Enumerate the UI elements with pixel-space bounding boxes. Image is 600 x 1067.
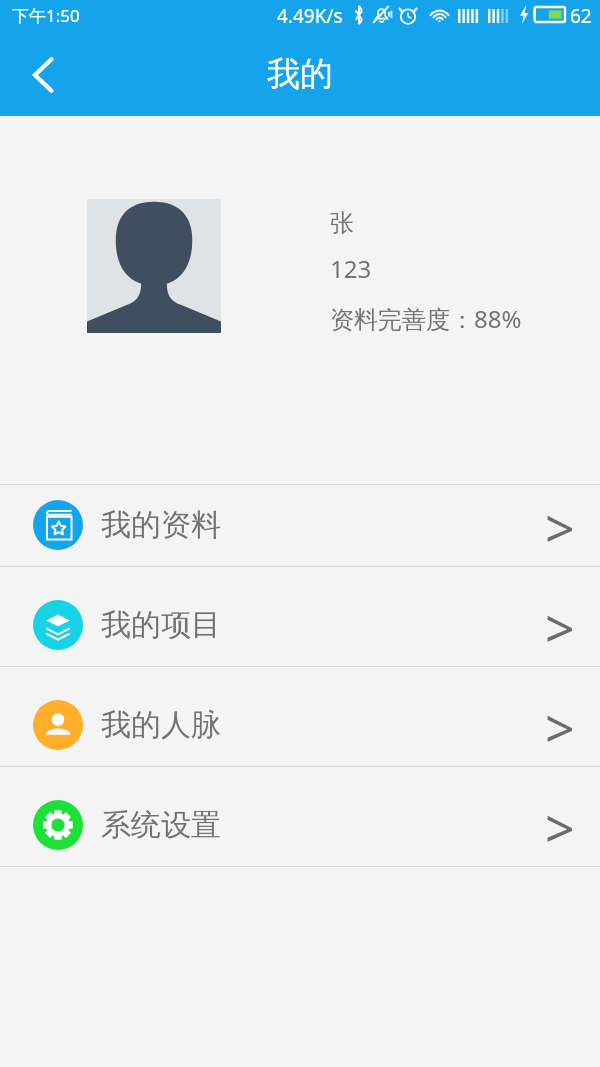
button[interactable]: 我的项目: [0, 567, 600, 666]
staticText: 4.49K/s: [277, 3, 343, 29]
button[interactable]: 我的资料: [0, 484, 600, 566]
button[interactable]: Back: [21, 51, 69, 99]
button[interactable]: 我的人脉: [0, 667, 600, 766]
staticText: >: [545, 592, 575, 663]
staticText: 我的资料: [101, 506, 221, 544]
staticText: 我的项目: [101, 606, 221, 644]
staticText: 我的: [267, 53, 333, 95]
staticText: 下午1:50: [12, 4, 80, 27]
staticText: 123: [330, 252, 372, 285]
staticText: >: [545, 492, 575, 563]
staticText: 张: [330, 208, 354, 238]
staticText: 资料完善度：88%: [330, 302, 522, 335]
staticText: 我的人脉: [101, 706, 221, 744]
staticText: 系统设置: [101, 806, 221, 844]
staticText: 62: [570, 3, 592, 29]
staticText: >: [545, 792, 575, 863]
button[interactable]: 系统设置: [0, 767, 600, 866]
button[interactable]: 张: [0, 116, 600, 483]
staticText: >: [545, 692, 575, 763]
